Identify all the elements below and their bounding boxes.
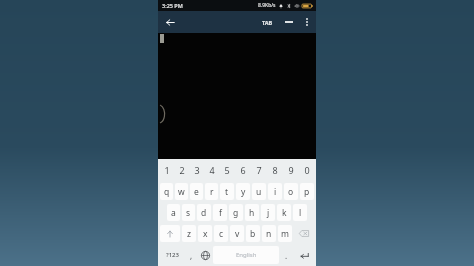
button[interactable]: 9	[283, 159, 299, 181]
staticText: 3:25 PM	[162, 2, 183, 9]
staticText: 8.9Kb/s	[258, 2, 276, 9]
button[interactable]: n	[262, 225, 276, 242]
button[interactable]: TAB	[260, 18, 275, 27]
button[interactable]: 1	[159, 159, 174, 181]
staticText: 9	[288, 164, 294, 176]
button[interactable]: f	[213, 204, 227, 221]
button[interactable]: e	[190, 183, 203, 200]
staticText: 7	[256, 164, 262, 176]
staticText: s	[186, 207, 191, 219]
button[interactable]: ?123	[160, 246, 184, 264]
staticText: 1	[164, 164, 170, 176]
staticText: w	[178, 186, 185, 198]
button[interactable]: p	[300, 183, 314, 200]
staticText: p	[304, 186, 310, 198]
button[interactable]: 2	[174, 159, 189, 181]
button[interactable]: o	[284, 183, 298, 200]
button[interactable]: m	[278, 225, 292, 242]
button[interactable]: Minimize	[282, 15, 296, 29]
staticText: e	[194, 186, 199, 198]
button[interactable]: j	[261, 204, 275, 221]
staticText: 3	[194, 164, 200, 176]
button[interactable]: u	[252, 183, 266, 200]
button[interactable]: k	[277, 204, 291, 221]
button[interactable]: Enter	[294, 246, 314, 264]
staticText: f	[219, 207, 222, 219]
staticText: r	[210, 186, 214, 198]
staticText: .	[285, 250, 288, 261]
staticText: English	[236, 251, 257, 259]
staticText: k	[282, 207, 287, 219]
staticText: l	[299, 207, 302, 219]
button[interactable]: Change language	[199, 246, 211, 264]
button[interactable]: .	[281, 246, 292, 264]
staticText: d	[201, 207, 207, 219]
staticText: 0	[304, 164, 310, 176]
button[interactable]: i	[268, 183, 282, 200]
button[interactable]: v	[230, 225, 244, 242]
staticText: h	[249, 207, 255, 219]
staticText: q	[164, 186, 170, 198]
staticText: b	[250, 228, 256, 240]
staticText: 6	[240, 164, 246, 176]
button[interactable]: y	[236, 183, 250, 200]
staticText: u	[256, 186, 262, 198]
button[interactable]: 5	[219, 159, 235, 181]
button[interactable]: English	[213, 246, 279, 264]
button[interactable]: 3	[189, 159, 204, 181]
button[interactable]: q	[160, 183, 173, 200]
staticText: 4	[209, 164, 215, 176]
button[interactable]: 8	[267, 159, 283, 181]
button[interactable]: s	[182, 204, 195, 221]
staticText: x	[203, 228, 208, 240]
staticText: n	[266, 228, 272, 240]
staticText: i	[274, 186, 277, 198]
staticText: 2	[179, 164, 185, 176]
staticText: y	[241, 186, 246, 198]
button[interactable]: w	[175, 183, 188, 200]
button[interactable]: 0	[299, 159, 315, 181]
staticText: z	[187, 228, 191, 240]
staticText: g	[233, 207, 239, 219]
button[interactable]: Backspace	[294, 225, 314, 242]
button[interactable]: g	[229, 204, 243, 221]
staticText: ?123	[166, 251, 179, 259]
staticText: m	[281, 228, 289, 240]
staticText: 5	[224, 164, 230, 176]
button[interactable]: r	[205, 183, 218, 200]
button[interactable]: a	[167, 204, 180, 221]
button[interactable]: 7	[251, 159, 267, 181]
button[interactable]: z	[182, 225, 196, 242]
staticText: c	[219, 228, 224, 240]
staticText: TAB	[262, 19, 273, 26]
button[interactable]: c	[214, 225, 228, 242]
button[interactable]: 4	[204, 159, 219, 181]
button[interactable]: Shift	[160, 225, 180, 242]
button[interactable]: Back	[162, 14, 178, 30]
button[interactable]: l	[293, 204, 307, 221]
staticText: t	[225, 186, 229, 198]
button[interactable]: x	[198, 225, 212, 242]
staticText: 8	[272, 164, 278, 176]
staticText: j	[267, 207, 270, 219]
button[interactable]: ,	[186, 246, 197, 264]
staticText: o	[288, 186, 294, 198]
button[interactable]: 6	[235, 159, 251, 181]
button[interactable]: b	[246, 225, 260, 242]
button[interactable]: d	[197, 204, 211, 221]
staticText: a	[171, 207, 176, 219]
staticText: v	[235, 228, 240, 240]
staticText: ,	[190, 250, 193, 261]
button[interactable]: t	[220, 183, 234, 200]
button[interactable]: h	[245, 204, 259, 221]
button[interactable]: More options	[300, 15, 314, 29]
